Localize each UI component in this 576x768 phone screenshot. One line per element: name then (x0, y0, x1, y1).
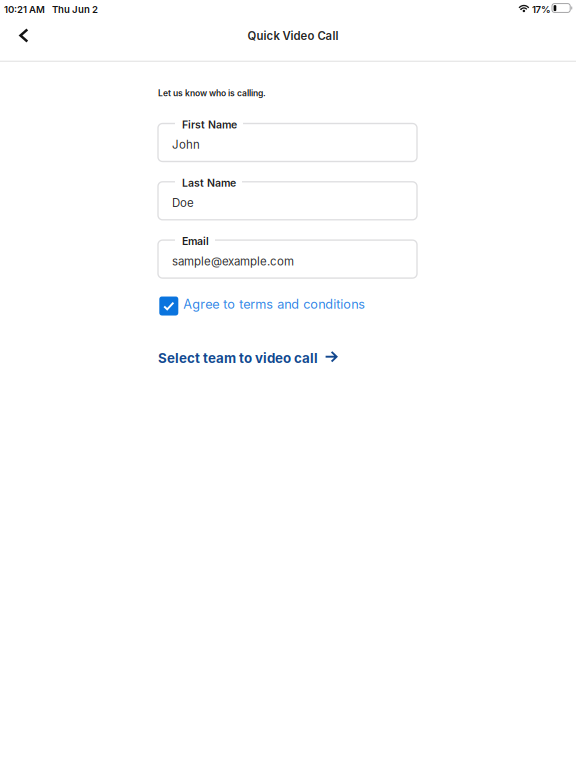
button[interactable]: Back (1, 20, 53, 50)
staticText: Thu Jun 2 (52, 4, 98, 15)
staticText: Doe (172, 196, 194, 210)
button[interactable]: Select team to video call (158, 350, 340, 368)
staticText: Select team to video call (158, 350, 318, 366)
staticText: John (172, 138, 200, 152)
button[interactable]: Agree to terms and conditions (159, 294, 366, 317)
staticText: Email (182, 235, 209, 248)
staticText: Quick Video Call (247, 29, 338, 43)
button[interactable]: Last Name (158, 182, 417, 220)
staticText: 10:21 AM (4, 4, 45, 15)
staticText: First Name (182, 118, 237, 131)
staticText: Last Name (182, 177, 236, 189)
button[interactable]: Email (158, 240, 417, 278)
staticText: 17% (532, 4, 551, 15)
staticText: Let us know who is calling. (158, 88, 266, 98)
staticText: Agree to terms and conditions (183, 296, 365, 312)
staticText: sample@example.com (172, 254, 294, 268)
button[interactable]: First Name (158, 123, 417, 161)
